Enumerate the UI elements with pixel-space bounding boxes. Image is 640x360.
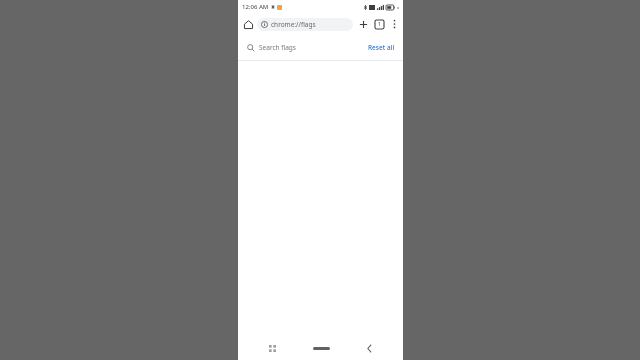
button[interactable]: Switch tabs, 1 tab [372,17,386,31]
staticText: 12:06 AM [242,3,269,11]
button[interactable]: Reset all [365,40,398,55]
button[interactable]: chrome://flags [257,18,353,31]
staticText: Reset all [368,43,395,52]
staticText: Search flags [259,43,296,52]
button[interactable]: Home [306,338,336,358]
button[interactable]: More options [387,17,401,31]
staticText: 1 [378,21,381,28]
button[interactable]: New tab [356,17,370,31]
button[interactable]: Back [359,338,379,358]
staticText: chrome://flags [271,20,316,29]
button[interactable]: Search flags [243,40,361,55]
button[interactable]: Recent apps [262,338,282,358]
button[interactable]: Home [241,17,255,31]
